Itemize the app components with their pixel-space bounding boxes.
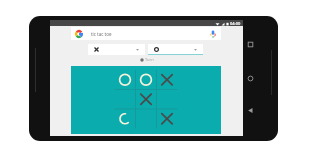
button[interactable] [148,44,203,55]
button[interactable]: Back [244,104,257,117]
staticText: tic tac toe [91,31,112,37]
staticText: 04:00 [230,21,241,26]
button[interactable]: Voice search [209,30,217,38]
button[interactable]: tic tac toe [71,27,221,40]
button[interactable] [88,44,145,55]
button[interactable]: Home [244,72,257,85]
staticText: Turn [145,57,154,62]
button[interactable]: Turn [140,57,154,62]
button[interactable]: Overview [244,38,257,51]
